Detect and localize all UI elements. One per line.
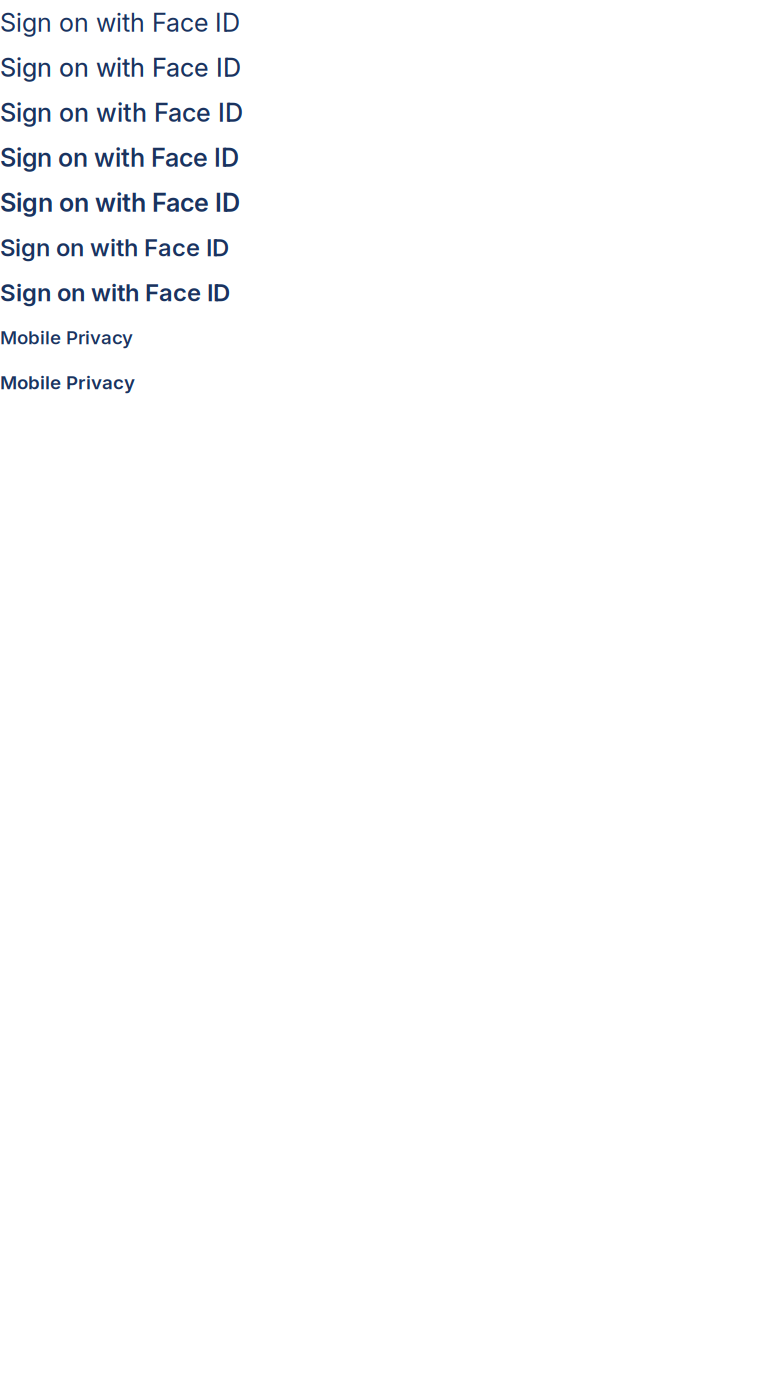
- staticText: Sign on with Face ID: [0, 97, 243, 128]
- staticText: Sign on with Face ID: [0, 278, 230, 307]
- staticText: Sign on with Face ID: [0, 233, 229, 262]
- staticText: Sign on with Face ID: [0, 52, 241, 83]
- staticText: Sign on with Face ID: [0, 187, 240, 218]
- staticText: Mobile Privacy: [0, 371, 135, 394]
- staticText: Sign on with Face ID: [0, 142, 239, 173]
- staticText: Mobile Privacy: [0, 326, 133, 349]
- staticText: Sign on with Face ID: [0, 7, 240, 38]
